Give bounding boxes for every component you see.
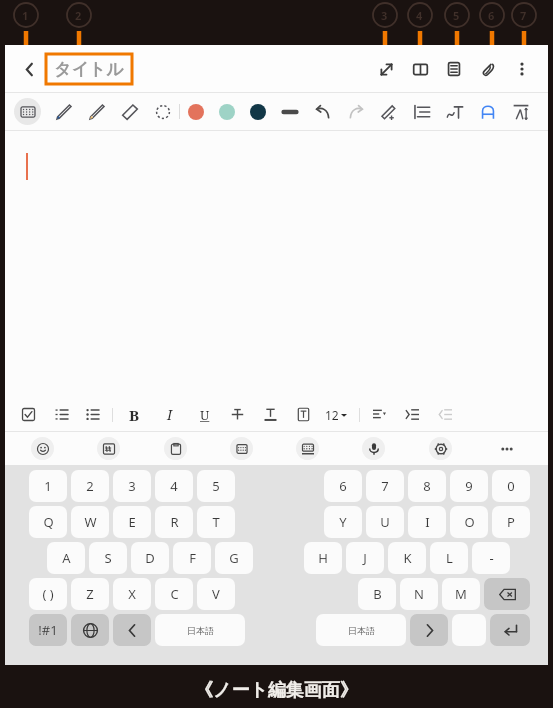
button[interactable]: Convert handwriting [438, 95, 471, 128]
button[interactable]: Attach file [471, 52, 505, 86]
button[interactable]: A [47, 542, 85, 574]
button[interactable]: Pen [47, 95, 80, 128]
button[interactable]: G [215, 542, 253, 574]
button[interactable]: 8 [408, 470, 446, 502]
button[interactable]: P [492, 506, 530, 538]
button[interactable]: Color swatch [211, 96, 242, 127]
button[interactable]: 9 [450, 470, 488, 502]
button[interactable]: Q [29, 506, 67, 538]
button[interactable]: ゝ [452, 614, 486, 646]
staticText: 2 [86, 477, 94, 495]
button[interactable]: Color swatch [180, 96, 211, 127]
button[interactable]: Stroke width [273, 95, 306, 128]
button[interactable]: B [358, 578, 396, 610]
button[interactable]: Undo [306, 95, 339, 128]
button[interactable]: Align text [405, 95, 438, 128]
button[interactable]: 2 [71, 470, 109, 502]
button[interactable]: U [195, 405, 214, 424]
button[interactable]: W [71, 506, 109, 538]
button[interactable]: Next candidate [410, 614, 448, 646]
button[interactable]: 日本語 [155, 614, 245, 646]
button[interactable]: Emoji [31, 437, 54, 460]
button[interactable]: More options [505, 52, 539, 86]
button[interactable]: C [155, 578, 193, 610]
button[interactable]: Eraser [113, 95, 146, 128]
button[interactable]: O [450, 506, 488, 538]
button[interactable]: Decrease indent [436, 405, 455, 424]
button[interactable]: Text options [504, 95, 537, 128]
button[interactable]: Numbered list [52, 405, 71, 424]
staticText: - [489, 549, 494, 567]
button[interactable]: Change language [71, 614, 109, 646]
button[interactable]: Insert pen [372, 95, 405, 128]
button[interactable]: Bulleted list [83, 405, 102, 424]
button[interactable]: L [430, 542, 468, 574]
button[interactable]: ( ) [29, 578, 67, 610]
button[interactable]: Increase indent [403, 405, 422, 424]
button[interactable]: 1 [29, 470, 67, 502]
button[interactable]: R [155, 506, 193, 538]
button[interactable]: Checkbox list [19, 405, 38, 424]
staticText: 7 [520, 8, 527, 23]
button[interactable]: Voice input [362, 437, 385, 460]
staticText: D [145, 549, 155, 567]
button[interactable]: 4 [155, 470, 193, 502]
button[interactable]: タイトル [46, 54, 132, 84]
button[interactable]: T [197, 506, 235, 538]
staticText: J [363, 549, 367, 567]
button[interactable]: Keyboard input [14, 98, 41, 125]
button[interactable]: 5 [197, 470, 235, 502]
button[interactable]: S [89, 542, 127, 574]
button[interactable]: Page view [437, 52, 471, 86]
button[interactable]: Strikethrough [228, 405, 247, 424]
button[interactable]: Clipboard [164, 437, 187, 460]
button[interactable]: Color swatch [242, 96, 273, 127]
button[interactable]: Z [71, 578, 109, 610]
button[interactable]: K [388, 542, 426, 574]
button[interactable]: H [304, 542, 342, 574]
staticText: 7 [381, 477, 389, 495]
button[interactable]: 3 [113, 470, 151, 502]
button[interactable]: Redo [339, 95, 372, 128]
button[interactable]: Shape recognition [471, 95, 504, 128]
button[interactable]: !#1 [29, 614, 67, 646]
button[interactable]: Paragraph alignment [370, 405, 389, 424]
button[interactable]: Lasso select [146, 95, 179, 128]
button[interactable]: Y [324, 506, 362, 538]
button[interactable]: X [113, 578, 151, 610]
button[interactable]: 6 [324, 470, 362, 502]
button[interactable]: M [442, 578, 480, 610]
button[interactable]: 日本語 [316, 614, 406, 646]
button[interactable]: Highlight color [294, 405, 313, 424]
button[interactable]: Previous candidate [113, 614, 151, 646]
button[interactable]: Backspace [484, 578, 530, 610]
button[interactable]: More options [495, 437, 518, 460]
button[interactable]: V [197, 578, 235, 610]
button[interactable]: Keyboard settings [429, 437, 452, 460]
button[interactable]: Floating keyboard [296, 437, 319, 460]
staticText: C [170, 585, 179, 603]
button[interactable]: 0 [492, 470, 530, 502]
button[interactable]: Expand [369, 52, 403, 86]
button[interactable]: I [408, 506, 446, 538]
button[interactable]: - [472, 542, 510, 574]
button[interactable]: Symbols [97, 437, 120, 460]
button[interactable]: Back [13, 53, 45, 85]
button[interactable]: D [131, 542, 169, 574]
button[interactable]: U [366, 506, 404, 538]
staticText: 1 [44, 477, 52, 495]
button[interactable]: Enter [490, 614, 530, 646]
button[interactable]: J [346, 542, 384, 574]
button[interactable]: Highlighter [80, 95, 113, 128]
button[interactable]: Split keyboard [230, 437, 253, 460]
button[interactable]: 12 [323, 407, 349, 423]
button[interactable]: Text color [261, 405, 280, 424]
button[interactable]: Book view [403, 52, 437, 86]
button[interactable]: 7 [366, 470, 404, 502]
button[interactable]: N [400, 578, 438, 610]
button[interactable]: I [160, 405, 179, 424]
button[interactable]: E [113, 506, 151, 538]
button[interactable]: B [125, 405, 144, 424]
button[interactable]: F [173, 542, 211, 574]
